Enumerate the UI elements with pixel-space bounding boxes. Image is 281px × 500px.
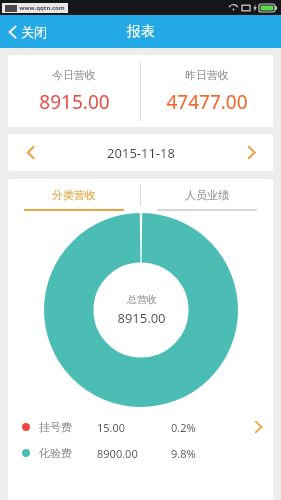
button[interactable]: Next day <box>229 134 273 171</box>
staticText: 15.00 <box>97 420 171 435</box>
staticText: 挂号费 <box>39 420 97 434</box>
staticText: 8900.00 <box>97 446 171 461</box>
button[interactable]: 分类营收 <box>8 179 140 211</box>
staticText: 化验费 <box>39 446 97 460</box>
button[interactable]: 挂号费 <box>8 414 273 440</box>
staticText: 今日营收 <box>52 68 96 82</box>
button[interactable]: 今日营收 <box>8 55 140 127</box>
staticText: www.qqtn.com <box>19 4 65 12</box>
button[interactable]: 化验费 <box>8 440 273 466</box>
button[interactable]: 人员业绩 <box>141 179 273 211</box>
button[interactable]: Previous day <box>8 134 52 171</box>
staticText: 人员业绩 <box>185 188 229 202</box>
staticText: 关闭 <box>21 24 47 40</box>
staticText: 昨日营收 <box>185 68 229 82</box>
button[interactable]: 关闭 <box>0 15 57 48</box>
staticText: 分类营收 <box>52 188 96 202</box>
staticText: 8915.00 <box>39 89 110 115</box>
staticText: 总营收 <box>127 293 157 306</box>
staticText: 8915.00 <box>117 309 166 327</box>
staticText: 9.8% <box>171 446 254 461</box>
staticText: 47477.00 <box>166 89 248 115</box>
button[interactable]: 昨日营收 <box>141 55 273 127</box>
staticText: 报表 <box>127 23 155 41</box>
staticText: 0.2% <box>171 420 254 435</box>
staticText: 2015-11-18 <box>107 144 175 162</box>
